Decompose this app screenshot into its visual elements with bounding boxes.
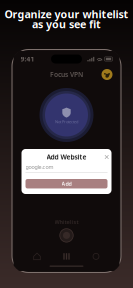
staticText: as you see fit	[32, 17, 101, 31]
button[interactable]: Toggle VPN connection	[39, 88, 93, 142]
staticText: 9:41	[20, 55, 34, 63]
button[interactable]: Add website	[59, 228, 73, 242]
staticText: Add Website	[46, 153, 86, 161]
staticText: Whitelist	[54, 218, 78, 225]
staticText: google.com	[25, 163, 53, 171]
button[interactable]: Add	[25, 179, 107, 188]
staticText: Focus VPN	[50, 70, 83, 79]
staticText: Add	[61, 180, 71, 187]
staticText: Not Protected	[55, 119, 78, 124]
button[interactable]: Whitelist	[60, 252, 72, 260]
button[interactable]: Settings	[90, 252, 102, 260]
staticText: Organize your whitelist	[4, 7, 128, 21]
button[interactable]: Home	[31, 252, 43, 260]
button[interactable]: Close	[102, 152, 111, 162]
button[interactable]: Profile	[101, 69, 112, 80]
